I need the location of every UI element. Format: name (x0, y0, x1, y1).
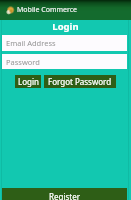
button[interactable]: Login (15, 75, 41, 88)
button[interactable]: Register (2, 188, 127, 200)
other: App icon (6, 6, 14, 14)
staticText: Register (49, 191, 81, 200)
staticText: Password (6, 57, 40, 67)
button[interactable]: Password (2, 54, 127, 69)
staticText: Mobile Commerce (17, 5, 78, 15)
staticText: Login (18, 76, 39, 87)
button[interactable]: Forgot Password (44, 75, 116, 88)
staticText: Forgot Password (48, 76, 112, 87)
staticText: Email Address (6, 38, 56, 48)
button[interactable]: Email Address (2, 35, 127, 51)
staticText: Login (0, 20, 131, 33)
